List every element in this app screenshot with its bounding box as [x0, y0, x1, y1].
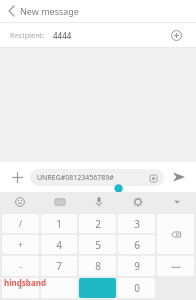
staticText: New message — [20, 5, 79, 17]
button[interactable]: 8 — [79, 256, 116, 276]
button[interactable]: 1 — [41, 214, 77, 233]
button[interactable]: 5 — [79, 235, 116, 254]
staticText: Recipient: — [10, 30, 45, 40]
button[interactable] — [41, 278, 77, 298]
button[interactable]: * — [2, 278, 39, 298]
staticText: 6 — [134, 238, 140, 252]
button[interactable]: 2 — [79, 214, 116, 233]
button[interactable]: Space — [157, 256, 194, 276]
button[interactable]: Keyboard layout — [40, 192, 79, 212]
button[interactable]: Enter — [79, 278, 116, 298]
button[interactable]: Send — [168, 166, 190, 188]
staticText: 0 — [134, 281, 140, 295]
staticText: + — [18, 239, 23, 250]
button[interactable]: 3 — [118, 214, 155, 233]
button[interactable]: Add attachment — [6, 166, 28, 188]
button[interactable]: Add contact — [166, 25, 186, 45]
staticText: 4 — [56, 238, 62, 252]
button[interactable]: 6 — [118, 235, 155, 254]
button[interactable]: Backspace — [157, 214, 194, 254]
button[interactable]: 0 — [118, 278, 155, 298]
button[interactable]: 7 — [41, 256, 77, 276]
staticText: hindsband — [4, 277, 46, 288]
button[interactable]: Voice input — [79, 192, 118, 212]
button[interactable]: / — [2, 214, 39, 233]
staticText: 7 — [56, 259, 62, 273]
staticText: 8 — [95, 259, 101, 273]
button[interactable]: 4 — [41, 235, 77, 254]
button[interactable]: 9 — [118, 256, 155, 276]
button[interactable]: + — [2, 235, 39, 254]
staticText: / — [19, 218, 22, 229]
button[interactable]: - — [2, 256, 39, 276]
staticText: 3 — [134, 217, 140, 231]
staticText: UNREG#08123456789# — [37, 173, 114, 183]
staticText: 2 — [95, 217, 101, 231]
staticText: 9 — [134, 259, 140, 273]
button[interactable]: Hide keyboard — [157, 192, 196, 212]
staticText: 1 — [56, 217, 62, 231]
button[interactable]: UNREG#08123456789# — [30, 169, 164, 186]
staticText: - — [19, 261, 22, 272]
staticText: 5 — [95, 238, 101, 252]
staticText: * — [18, 283, 23, 294]
button[interactable]: Settings — [118, 192, 157, 212]
button[interactable]: New message — [0, 0, 87, 22]
button[interactable]: Emoji — [0, 192, 40, 212]
staticText: 4444 — [53, 30, 72, 41]
